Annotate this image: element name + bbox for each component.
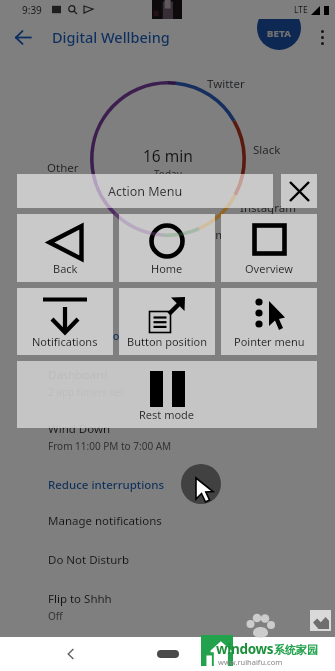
staticText: Unlocks [149, 288, 187, 302]
staticText: Gmail [207, 227, 239, 243]
staticText: Action Menu [108, 183, 183, 200]
staticText: Manage notifications [48, 513, 162, 529]
button[interactable]: 10 [118, 262, 218, 302]
staticText: Notifications [238, 288, 298, 302]
button[interactable]: Pointer menu [221, 288, 317, 355]
staticText: Do Not Disturb [48, 552, 130, 568]
staticText: 10 [158, 262, 178, 285]
staticText: BETA [267, 27, 292, 40]
staticText: 16 min [143, 145, 193, 166]
button[interactable]: Action Menu [17, 174, 273, 208]
staticText: 9:39 [22, 3, 42, 17]
button[interactable]: Notifications [17, 288, 113, 355]
button[interactable]: Overview [221, 214, 317, 282]
button[interactable]: Rest mode [17, 361, 317, 428]
button[interactable]: Back [6, 19, 40, 55]
staticText: Pointer menu [234, 334, 305, 349]
button[interactable]: Close [281, 174, 317, 208]
staticText: Button position [127, 334, 207, 349]
staticText: Off [48, 609, 63, 623]
staticText: 系统家园 [274, 643, 318, 657]
staticText: LTE [294, 4, 308, 16]
button[interactable]: Back [17, 214, 113, 282]
button[interactable]: Flip to Shhh [0, 591, 335, 629]
button[interactable]: BETA [257, 6, 301, 50]
staticText: windows [216, 640, 274, 658]
staticText: Screen time [40, 288, 96, 302]
button[interactable]: Manage notifications [0, 513, 335, 551]
button[interactable]: Wind Down [0, 421, 335, 459]
button[interactable]: Home [119, 214, 215, 282]
button[interactable]: Back [56, 637, 86, 671]
staticText: 43 [258, 262, 278, 285]
staticText: Rest mode [139, 407, 195, 422]
staticText: Today [154, 167, 182, 181]
button[interactable]: More options [309, 19, 335, 55]
button[interactable]: 16 min [18, 262, 118, 302]
button[interactable]: Home [149, 644, 187, 664]
staticText: Digital Wellbeing [52, 27, 170, 47]
staticText: Other [47, 160, 79, 176]
staticText: Ways to disconnect [48, 328, 150, 343]
staticText: 16 min [41, 262, 96, 285]
button[interactable]: Do Not Disturb [0, 552, 335, 590]
staticText: Slack [253, 142, 281, 158]
staticText: Back [53, 261, 78, 276]
staticText: Flip to Shhh [48, 591, 112, 607]
button[interactable]: Button position [119, 288, 215, 355]
staticText: Notifications [32, 334, 98, 349]
staticText: Home [151, 261, 183, 276]
button[interactable]: Reduce interruptions [48, 477, 165, 493]
staticText: Wind Down [48, 421, 111, 437]
button[interactable]: 43 [218, 262, 318, 302]
staticText: From 11:00 PM to 7:00 AM [48, 439, 172, 453]
button[interactable]: Dashboard [0, 367, 335, 405]
staticText: Instagram [240, 200, 296, 216]
staticText: Twitter [207, 76, 245, 92]
staticText: Overview [245, 261, 293, 276]
staticText: www.ruihaifu.com [218, 657, 283, 667]
